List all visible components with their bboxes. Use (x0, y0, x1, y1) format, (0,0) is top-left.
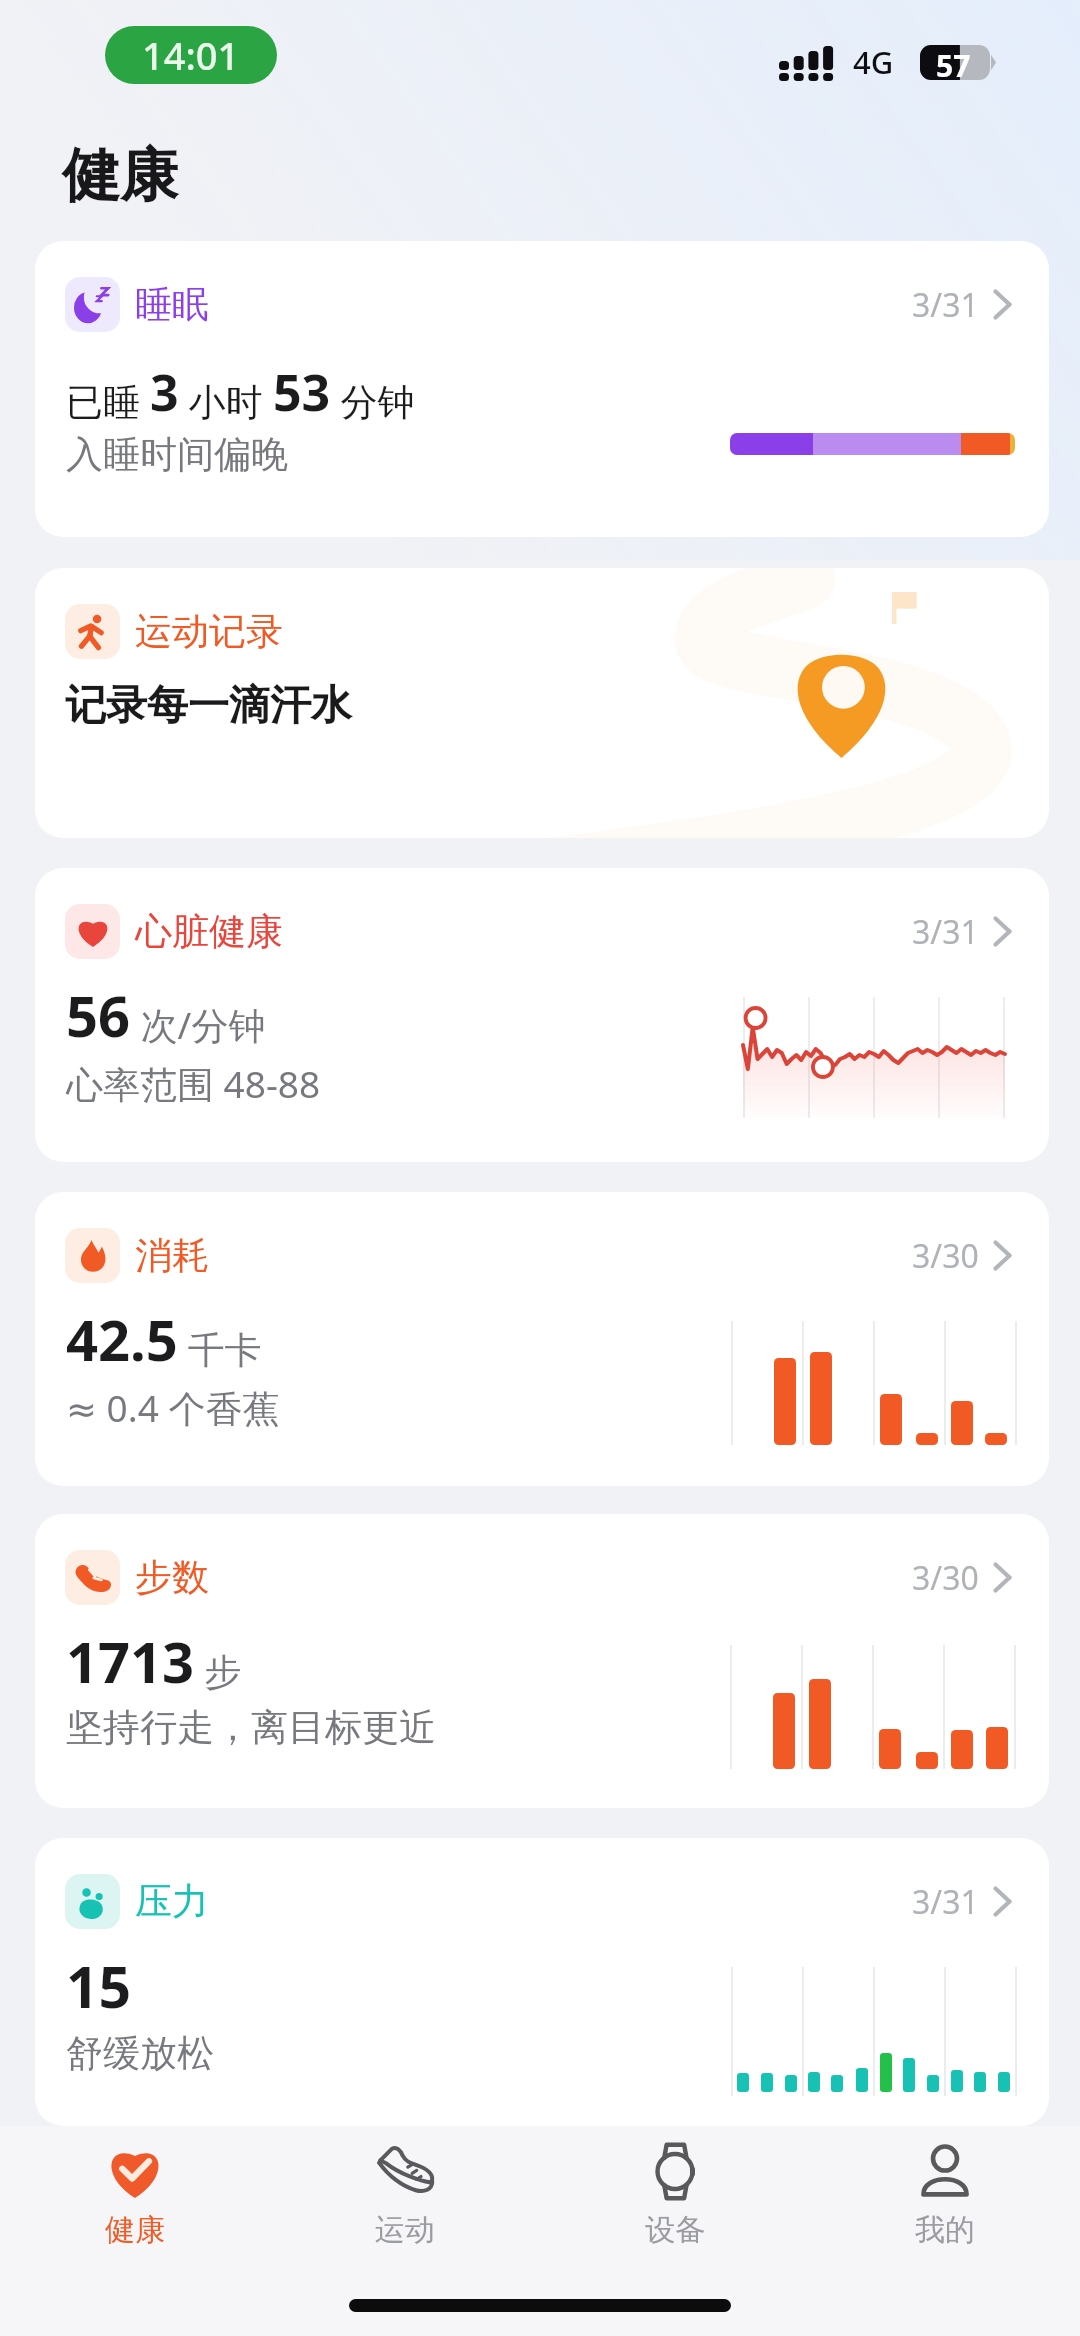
staticText: 心脏健康 (135, 908, 283, 955)
staticText: 次/分钟 (131, 999, 266, 1050)
other: 我的 (921, 2145, 969, 2197)
staticText: 已睡 (66, 375, 150, 426)
staticText: 3/31 (912, 283, 979, 327)
staticText: 小时 (179, 375, 273, 426)
staticText: 运动 (375, 2211, 435, 2249)
staticText: 坚持行走，离目标更近 (66, 1704, 436, 1751)
staticText: 14:01 (142, 29, 240, 81)
button[interactable]: 步数 (35, 1514, 1049, 1808)
staticText: 4G (853, 41, 894, 83)
button[interactable]: 设备 (540, 2126, 810, 2250)
staticText: 我的 (915, 2211, 975, 2249)
button[interactable]: 心脏健康 (35, 868, 1049, 1162)
button[interactable]: 压力 (35, 1838, 1049, 2126)
other: 运动 (377, 2147, 434, 2195)
staticText: 42.5 (66, 1301, 178, 1377)
staticText: 健康 (105, 2211, 165, 2249)
button[interactable]: 14:01 (105, 26, 277, 84)
button[interactable]: 运动 (270, 2126, 540, 2250)
staticText: 3/31 (912, 910, 979, 954)
staticText: 1713 (66, 1623, 195, 1699)
staticText: 入睡时间偏晚 (66, 431, 288, 478)
button[interactable]: 我的 (810, 2126, 1080, 2250)
staticText: 56 (66, 977, 131, 1053)
button[interactable]: 睡眠 (35, 241, 1049, 537)
staticText: 57 (936, 45, 971, 80)
staticText: 15 (66, 1947, 132, 2025)
staticText: 消耗 (135, 1232, 209, 1279)
staticText: 3/31 (912, 1880, 979, 1924)
staticText: 步数 (135, 1554, 209, 1601)
staticText: 3/30 (912, 1556, 979, 1600)
staticText: 3 (150, 358, 179, 426)
staticText: 舒缓放松 (66, 2030, 214, 2077)
button[interactable]: 运动记录 (35, 568, 1049, 838)
staticText: 心率范围 48-88 (66, 1058, 321, 1109)
staticText: 压力 (135, 1878, 209, 1925)
staticText: 睡眠 (135, 281, 209, 328)
staticText: 健康 (62, 139, 178, 212)
button[interactable]: 健康 (0, 2126, 270, 2250)
staticText: 记录每一滴汗水 (65, 680, 352, 732)
other: 设备 (656, 2143, 694, 2200)
staticText: 分钟 (331, 375, 415, 426)
other: 健康 (106, 2144, 164, 2198)
button[interactable]: 消耗 (35, 1192, 1049, 1486)
staticText: 设备 (645, 2211, 705, 2249)
staticText: 步 (195, 1645, 242, 1696)
staticText: 53 (273, 358, 331, 426)
staticText: 运动记录 (135, 608, 283, 655)
staticText: ≈ 0.4 个香蕉 (66, 1382, 280, 1433)
staticText: 千卡 (178, 1323, 262, 1374)
staticText: 3/30 (912, 1234, 979, 1278)
